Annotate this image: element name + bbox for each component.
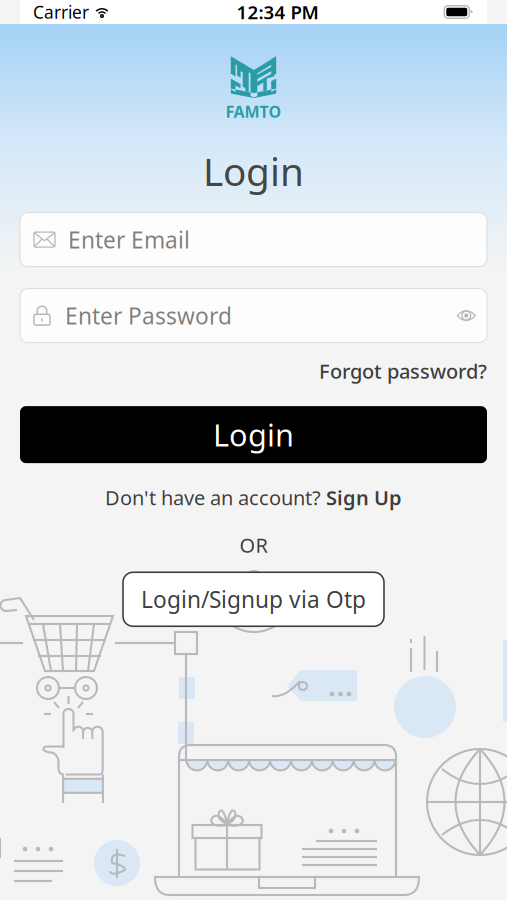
button[interactable]: Login/Signup via Otp xyxy=(123,572,384,626)
button[interactable]: Sign Up xyxy=(326,484,402,511)
staticText: Sign Up xyxy=(326,484,402,511)
staticText: FAMTO xyxy=(225,101,281,122)
staticText: Login xyxy=(203,145,304,196)
staticText: Enter Password xyxy=(65,300,232,331)
button[interactable]: Login xyxy=(20,406,487,463)
staticText: Enter Email xyxy=(68,224,190,255)
staticText: Don't have an account? xyxy=(105,484,321,511)
staticText: Login/Signup via Otp xyxy=(141,584,366,614)
staticText: Forgot password? xyxy=(319,358,487,384)
staticText: OR xyxy=(239,532,267,558)
staticText: 12:34 PM xyxy=(236,0,318,24)
staticText: Login xyxy=(213,414,294,455)
button[interactable]: Forgot password? xyxy=(319,358,487,384)
staticText: Carrier xyxy=(33,0,89,23)
